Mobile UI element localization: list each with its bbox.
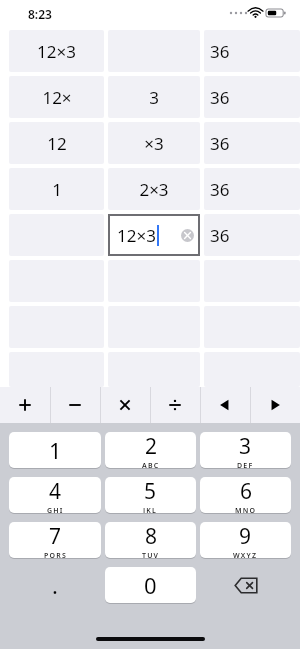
- button[interactable]: Clear text: [181, 229, 194, 242]
- staticText: 1: [52, 178, 62, 201]
- button[interactable]: 8: [105, 522, 196, 558]
- staticText: ABC: [142, 461, 160, 468]
- button[interactable]: 6: [200, 477, 291, 513]
- button[interactable]: left: [200, 387, 250, 423]
- staticText: 36: [210, 224, 230, 247]
- staticText: 2×3: [139, 178, 169, 201]
- staticText: TUV: [142, 551, 160, 558]
- staticText: 36: [210, 40, 230, 63]
- button[interactable]: ×3: [108, 122, 200, 164]
- button[interactable]: 12×: [9, 76, 104, 118]
- staticText: WXYZ: [233, 551, 258, 558]
- staticText: MNO: [235, 506, 257, 513]
- button[interactable]: 3: [108, 76, 200, 118]
- staticText: 4: [49, 477, 62, 506]
- staticText: JKL: [143, 506, 158, 513]
- staticText: 12×: [42, 86, 72, 109]
- button[interactable]: 36: [204, 122, 300, 164]
- staticText: 0: [144, 570, 157, 600]
- button[interactable]: 12×3: [108, 214, 200, 256]
- staticText: 36: [210, 86, 230, 109]
- button[interactable]: Backspace: [200, 567, 291, 603]
- staticText: 3: [239, 432, 252, 461]
- staticText: 8: [145, 522, 158, 551]
- button[interactable]: 12: [9, 122, 104, 164]
- button[interactable]: minus: [50, 387, 100, 423]
- button[interactable]: 0: [105, 567, 196, 603]
- button[interactable]: 7: [9, 522, 101, 558]
- staticText: 12: [47, 132, 67, 155]
- staticText: 7: [49, 522, 62, 551]
- button[interactable]: 12×3: [9, 30, 104, 72]
- staticText: .: [52, 570, 58, 600]
- staticText: PQRS: [44, 551, 67, 558]
- button[interactable]: 3: [200, 432, 291, 468]
- button[interactable]: 36: [204, 76, 300, 118]
- staticText: ×3: [144, 132, 164, 155]
- staticText: DEF: [237, 461, 254, 468]
- staticText: 12×3: [117, 224, 156, 247]
- button[interactable]: 9: [200, 522, 291, 558]
- button[interactable]: 36: [204, 214, 300, 256]
- staticText: 36: [210, 178, 230, 201]
- button[interactable]: 1: [9, 168, 104, 210]
- staticText: 1: [49, 435, 62, 465]
- staticText: GHI: [47, 506, 64, 513]
- button[interactable]: 2×3: [108, 168, 200, 210]
- staticText: 12×3: [37, 40, 76, 63]
- button[interactable]: 36: [204, 30, 300, 72]
- button[interactable]: plus: [0, 387, 50, 423]
- button[interactable]: right: [250, 387, 300, 423]
- button[interactable]: 1: [9, 432, 101, 468]
- button[interactable]: 5: [105, 477, 196, 513]
- button[interactable]: times: [100, 387, 150, 423]
- button[interactable]: 36: [204, 168, 300, 210]
- staticText: 36: [210, 132, 230, 155]
- staticText: 9: [239, 522, 252, 551]
- staticText: 8:23: [28, 6, 52, 22]
- staticText: 6: [240, 477, 253, 506]
- staticText: 5: [144, 477, 157, 506]
- button[interactable]: 2: [105, 432, 196, 468]
- button[interactable]: divide: [150, 387, 200, 423]
- staticText: 2: [145, 432, 158, 461]
- button[interactable]: Decimal point: [9, 567, 101, 603]
- button[interactable]: 4: [9, 477, 101, 513]
- staticText: 3: [149, 86, 159, 109]
